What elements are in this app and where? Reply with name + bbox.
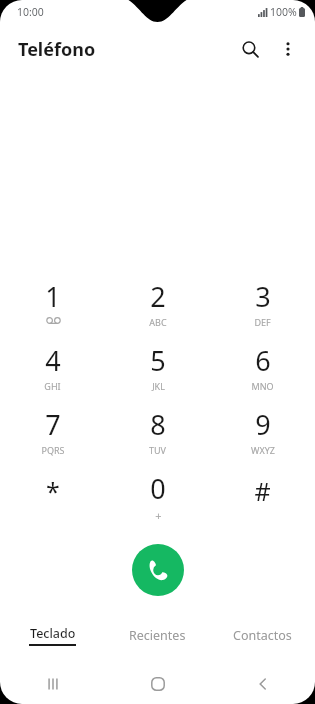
staticText: WXYZ: [251, 444, 275, 456]
staticText: 5: [150, 342, 166, 379]
button[interactable]: Home: [105, 664, 210, 704]
staticText: 0: [150, 470, 166, 507]
button[interactable]: Call: [132, 544, 184, 596]
staticText: TUV: [149, 444, 166, 456]
staticText: Recientes: [129, 627, 186, 644]
staticText: 4: [45, 342, 61, 379]
button[interactable]: 9: [210, 402, 315, 466]
button[interactable]: #: [210, 466, 315, 526]
button[interactable]: 3: [210, 274, 315, 338]
staticText: 8: [150, 406, 166, 443]
staticText: 2: [150, 278, 166, 315]
staticText: 7: [45, 406, 61, 443]
button[interactable]: *: [0, 466, 105, 526]
staticText: 9: [255, 406, 271, 443]
staticText: DEF: [254, 316, 271, 328]
staticText: ABC: [149, 316, 167, 328]
staticText: JKL: [152, 380, 165, 392]
staticText: MNO: [251, 380, 274, 392]
staticText: *: [46, 474, 60, 508]
staticText: 10:00: [17, 5, 44, 19]
button[interactable]: 1: [0, 274, 105, 338]
button[interactable]: Contactos: [210, 620, 315, 650]
staticText: PQRS: [41, 444, 65, 456]
staticText: 6: [255, 342, 271, 379]
staticText: 1: [45, 278, 61, 315]
button[interactable]: 7: [0, 402, 105, 466]
button[interactable]: 8: [105, 402, 210, 466]
staticText: Contactos: [233, 627, 292, 644]
button[interactable]: 2: [105, 274, 210, 338]
button[interactable]: Teclado: [0, 620, 105, 650]
button[interactable]: 5: [105, 338, 210, 402]
button[interactable]: 6: [210, 338, 315, 402]
staticText: GHI: [44, 380, 61, 392]
staticText: Teléfono: [18, 37, 96, 62]
staticText: Teclado: [30, 625, 76, 642]
staticText: 3: [255, 278, 271, 315]
button[interactable]: 4: [0, 338, 105, 402]
button[interactable]: Search: [231, 30, 269, 68]
button[interactable]: Recents: [0, 664, 105, 704]
staticText: +: [155, 508, 162, 523]
button[interactable]: Back: [210, 664, 315, 704]
staticText: 100%: [270, 5, 297, 19]
button[interactable]: More options: [269, 30, 307, 68]
staticText: #: [254, 474, 271, 508]
button[interactable]: Recientes: [105, 620, 210, 650]
button[interactable]: 0: [105, 466, 210, 526]
